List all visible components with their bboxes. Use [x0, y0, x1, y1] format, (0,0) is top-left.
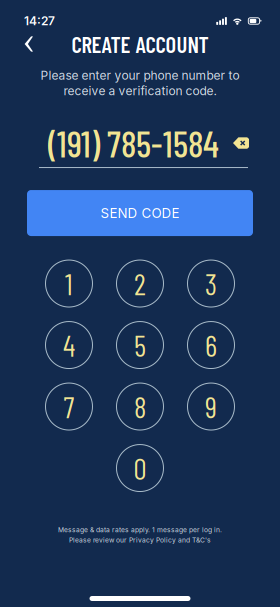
button[interactable]: 9 — [187, 383, 234, 430]
staticText: 4 — [63, 327, 75, 363]
staticText: 2 — [134, 266, 146, 301]
staticText: receive a verification code. — [63, 83, 216, 98]
button[interactable]: 8 — [116, 383, 163, 430]
staticText: 7 — [63, 389, 74, 424]
staticText: 0 — [133, 450, 146, 486]
button[interactable]: 7 — [45, 383, 92, 430]
button[interactable]: 6 — [187, 321, 234, 368]
staticText: (191) 785-1584 — [48, 121, 219, 165]
staticText: Message & data rates apply. 1 message pe… — [58, 526, 222, 534]
button[interactable]: Delete last digit — [233, 136, 249, 149]
staticText: Please enter your phone number to — [40, 68, 239, 82]
staticText: SEND CODE — [100, 205, 179, 221]
staticText: 9 — [205, 389, 217, 424]
button[interactable]: 4 — [45, 321, 92, 368]
button[interactable]: 1 — [45, 260, 92, 307]
staticText: 5 — [134, 327, 146, 363]
staticText: 3 — [205, 266, 217, 301]
button[interactable]: 2 — [116, 260, 163, 307]
staticText: 14:27 — [24, 14, 55, 28]
staticText: 1 — [65, 266, 73, 301]
button[interactable]: SEND CODE — [27, 190, 253, 236]
staticText: 6 — [205, 327, 217, 363]
button[interactable]: 0 — [116, 444, 163, 491]
staticText: Please review our Privacy Policy and T&C… — [69, 536, 211, 544]
button[interactable]: Back — [13, 30, 45, 58]
staticText: CREATE ACCOUNT — [71, 30, 208, 58]
staticText: 8 — [134, 389, 146, 424]
button[interactable]: 5 — [116, 321, 163, 368]
button[interactable]: 3 — [187, 260, 234, 307]
